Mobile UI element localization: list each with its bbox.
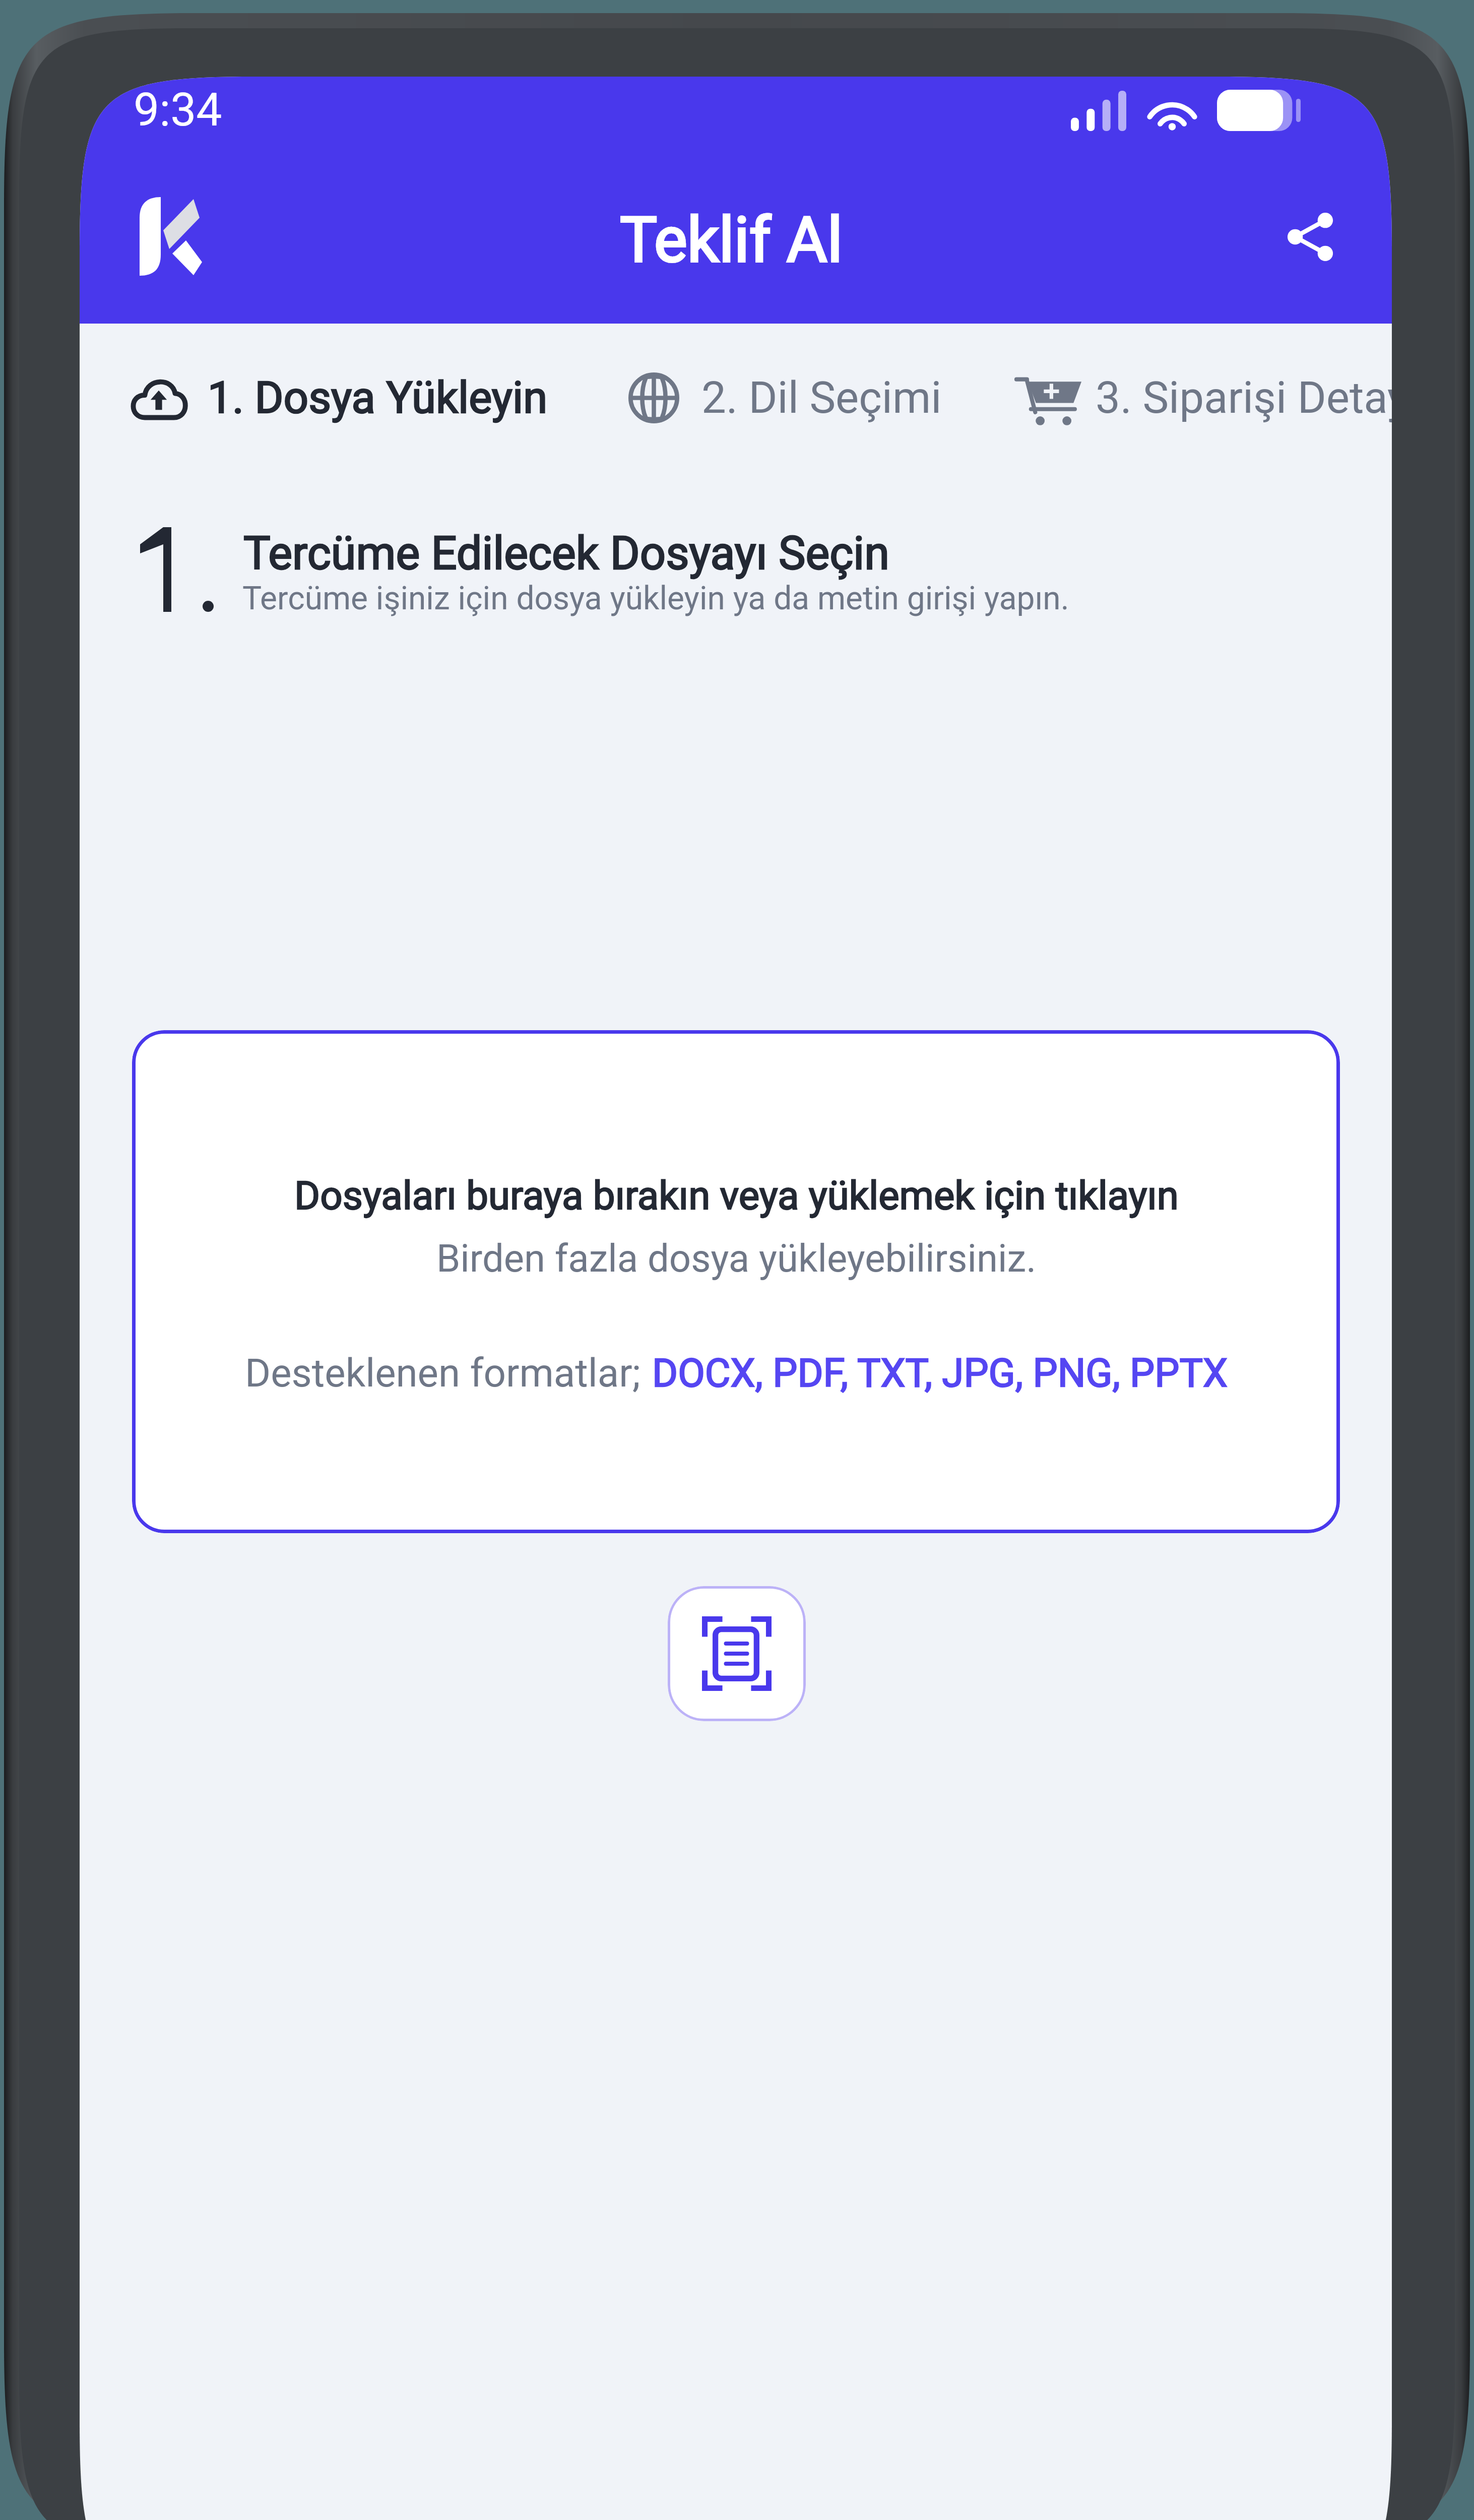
staticText: Tercüme işiniz için dosya yükleyin ya da…	[242, 580, 1069, 617]
button[interactable]: 3. Siparişi Detay	[1015, 372, 1392, 423]
staticText: Tercüme Edilecek Dosyayı Seçin	[243, 527, 889, 580]
button[interactable]: Scan document	[668, 1586, 806, 1721]
button[interactable]: 2. Dil Seçimi	[628, 372, 942, 423]
button[interactable]: Kelimeler logo	[128, 187, 213, 285]
staticText: Birden fazla dosya yükleyebilirsiniz.	[436, 1236, 1037, 1281]
staticText: 3. Siparişi Detay	[1096, 372, 1392, 423]
staticText: 1. Dosya Yükleyin	[208, 372, 548, 423]
staticText: Desteklenen formatlar;	[245, 1350, 641, 1396]
button[interactable]: 1. Dosya Yükleyin	[129, 372, 548, 423]
staticText: Teklif Al	[620, 204, 843, 277]
staticText: 2. Dil Seçimi	[701, 372, 942, 423]
button[interactable]: Share	[1280, 206, 1340, 268]
staticText: DOCX, PDF, TXT, JPG, PNG, PPTX	[652, 1350, 1228, 1396]
staticText: Dosyaları buraya bırakın veya yüklemek i…	[294, 1173, 1179, 1219]
button[interactable]	[132, 1030, 1340, 1533]
staticText: 9:34	[134, 83, 222, 137]
